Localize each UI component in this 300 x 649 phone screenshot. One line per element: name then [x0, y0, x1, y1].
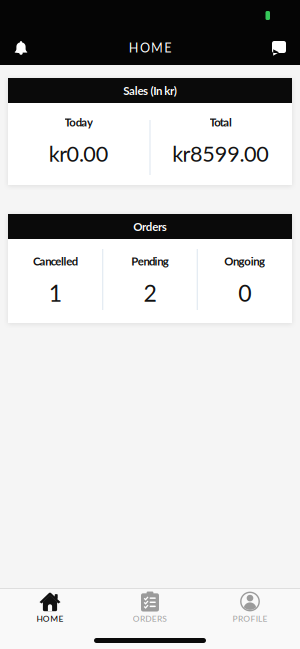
staticText: HOME — [37, 613, 63, 624]
staticText: kr0.00 — [49, 140, 109, 166]
staticText: Cancelled — [33, 254, 78, 268]
staticText: ORDERS — [133, 613, 167, 624]
button[interactable]: PROFILE — [200, 589, 300, 624]
staticText: Sales (In kr) — [123, 84, 177, 97]
staticText: PROFILE — [233, 613, 267, 624]
staticText: 2 — [143, 279, 156, 307]
staticText: 1 — [49, 279, 62, 307]
staticText: Orders — [133, 220, 167, 233]
button[interactable]: Notifications — [6, 35, 36, 61]
staticText: Pending — [131, 254, 169, 268]
staticText: Total — [210, 115, 232, 129]
button[interactable]: HOME — [0, 589, 100, 624]
staticText: HOME — [129, 40, 171, 55]
staticText: 0 — [238, 279, 251, 307]
button[interactable]: Messages — [264, 35, 294, 61]
staticText: Today — [65, 115, 93, 129]
staticText: Ongoing — [224, 254, 265, 268]
button[interactable]: ORDERS — [100, 589, 200, 624]
staticText: kr8599.00 — [172, 140, 269, 166]
